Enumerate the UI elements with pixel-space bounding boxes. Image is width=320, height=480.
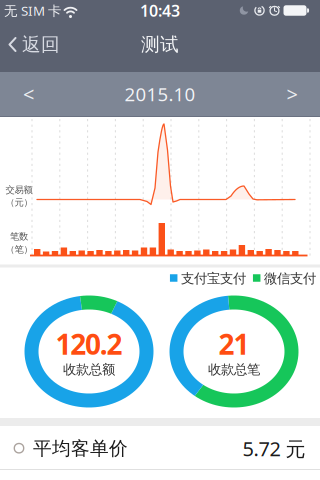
button[interactable]: 上一月 <box>10 76 46 112</box>
staticText: 21 <box>218 325 250 363</box>
button[interactable]: 下一月 <box>274 76 310 112</box>
staticText: > <box>286 81 297 107</box>
staticText: 平均客单价 <box>33 437 128 460</box>
staticText: （笔） <box>5 244 32 255</box>
staticText: 支付宝支付 <box>181 270 246 287</box>
staticText: 交易额 <box>5 184 32 196</box>
staticText: 2015.10 <box>124 82 195 106</box>
staticText: 无 SIM 卡 <box>4 2 61 19</box>
staticText: 收款总额 <box>63 361 115 378</box>
staticText: 返回 <box>22 33 60 56</box>
staticText: （元） <box>5 197 32 208</box>
button[interactable]: 平均客单价 <box>0 426 320 469</box>
staticText: 10:43 <box>140 0 180 21</box>
staticText: 5.72 元 <box>242 435 305 462</box>
staticText: < <box>23 81 34 107</box>
staticText: 微信支付 <box>264 270 316 287</box>
staticText: 120.2 <box>55 325 123 363</box>
staticText: 笔数 <box>10 231 28 242</box>
staticText: 测试 <box>141 33 179 56</box>
staticText: 收款总笔 <box>208 361 260 378</box>
button[interactable]: 返回 <box>8 29 68 59</box>
